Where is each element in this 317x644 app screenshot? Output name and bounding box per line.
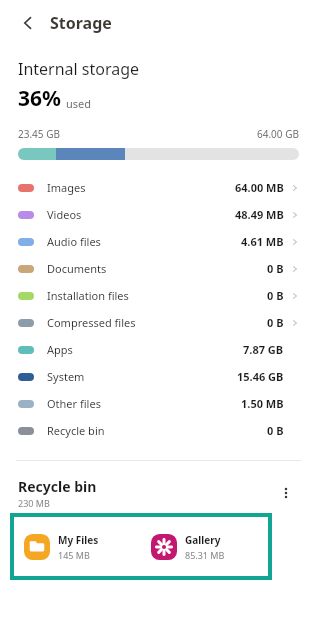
button[interactable]: My Files — [14, 517, 141, 576]
staticText: used — [66, 96, 92, 111]
staticText: 23.45 GB — [18, 127, 60, 141]
staticText: Recycle bin — [18, 477, 97, 496]
staticText: 7.87 GB — [243, 342, 284, 357]
staticText: 145 MB — [58, 549, 90, 561]
staticText: Gallery — [185, 533, 221, 547]
staticText: 0 B — [267, 315, 284, 330]
button[interactable]: System — [0, 363, 317, 390]
staticText: Documents — [47, 261, 107, 276]
button[interactable]: Installation files — [0, 282, 317, 309]
staticText: My Files — [58, 533, 99, 547]
staticText: Installation files — [47, 288, 129, 303]
staticText: Images — [47, 180, 86, 195]
staticText: 64.00 GB — [257, 127, 299, 141]
button[interactable]: Compressed files — [0, 309, 317, 336]
button[interactable]: Back — [12, 7, 44, 39]
button[interactable]: More options — [273, 480, 299, 506]
staticText: Compressed files — [47, 315, 136, 330]
staticText: Internal storage — [18, 58, 140, 80]
button[interactable]: Documents — [0, 255, 317, 282]
staticText: Videos — [47, 207, 82, 222]
staticText: Apps — [47, 342, 73, 357]
staticText: Storage — [50, 12, 112, 34]
button[interactable]: Images — [0, 174, 317, 201]
button[interactable]: Videos — [0, 201, 317, 228]
button[interactable]: Audio files — [0, 228, 317, 255]
staticText: 36% — [18, 84, 61, 113]
staticText: 1.50 MB — [241, 396, 284, 411]
staticText: Audio files — [47, 234, 101, 249]
button[interactable]: Recycle bin — [0, 417, 317, 444]
staticText: 85.31 MB — [185, 549, 225, 561]
staticText: 48.49 MB — [235, 207, 284, 222]
staticText: 64.00 MB — [235, 180, 284, 195]
button[interactable]: Apps — [0, 336, 317, 363]
staticText: 230 MB — [18, 497, 50, 509]
staticText: 0 B — [267, 288, 284, 303]
button[interactable]: Other files — [0, 390, 317, 417]
staticText: 0 B — [267, 261, 284, 276]
staticText: Other files — [47, 396, 101, 411]
staticText: Recycle bin — [47, 423, 105, 438]
staticText: 0 B — [267, 423, 284, 438]
staticText: System — [47, 369, 85, 384]
staticText: 15.46 GB — [237, 369, 284, 384]
button[interactable]: Gallery — [141, 517, 268, 576]
staticText: 4.61 MB — [241, 234, 284, 249]
